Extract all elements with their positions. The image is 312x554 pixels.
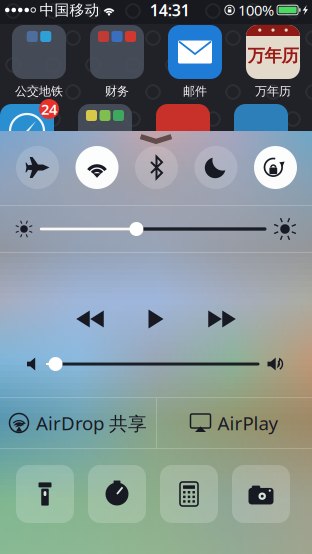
staticText: AirDrop 共享 (36, 411, 147, 435)
staticText: 100% (238, 0, 274, 20)
staticText: 公交地铁 (15, 84, 63, 99)
staticText: AirPlay (217, 411, 278, 435)
button[interactable]: Rotation Lock (254, 146, 297, 189)
staticText: 中国移动 (39, 1, 99, 19)
button[interactable]: Fast Forward (202, 306, 242, 332)
staticText: 24 (41, 99, 57, 119)
staticText: 万年历 (255, 84, 291, 99)
staticText: 财务 (105, 84, 129, 99)
button[interactable]: Bluetooth (135, 146, 178, 189)
staticText: 邮件 (183, 84, 207, 99)
button[interactable]: Rewind (70, 306, 110, 332)
button[interactable]: Timer (88, 465, 146, 523)
button[interactable]: Wi-Fi (75, 146, 118, 189)
button[interactable]: AirDrop 共享 (0, 398, 156, 448)
button[interactable]: Airplane Mode (16, 146, 59, 189)
button[interactable]: Flashlight (16, 465, 74, 523)
button[interactable]: Calculator (160, 465, 218, 523)
button[interactable]: Camera (232, 465, 290, 523)
button[interactable]: Do Not Disturb (194, 146, 237, 189)
staticText: 14:31 (150, 0, 190, 21)
staticText: 万年历 (247, 45, 298, 66)
button[interactable]: Play (136, 306, 176, 332)
button[interactable]: AirPlay (157, 398, 312, 448)
